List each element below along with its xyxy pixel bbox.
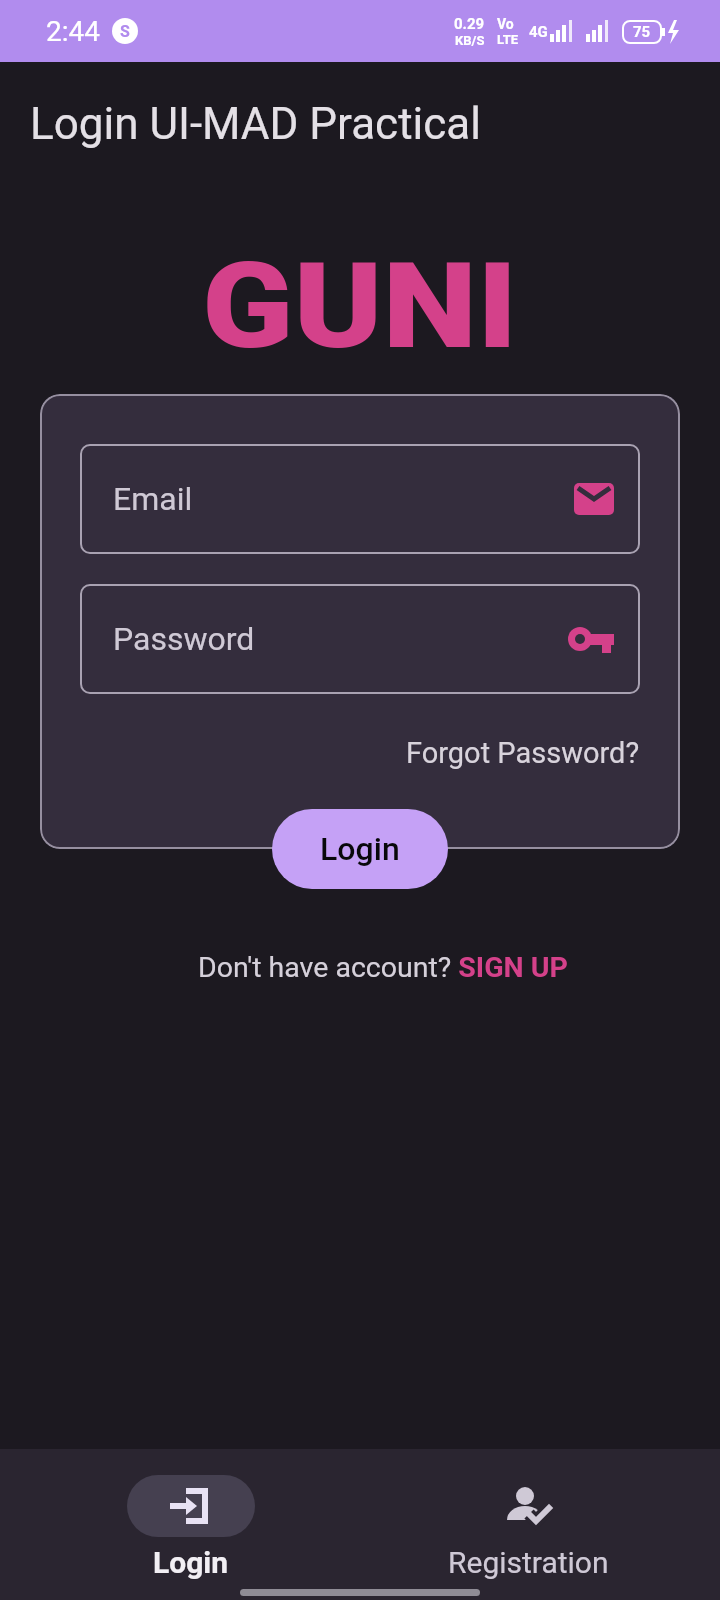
staticText: Email [113, 480, 193, 518]
staticText: LTE [497, 32, 519, 47]
staticText: 75 [633, 23, 651, 41]
staticText: Login UI-MAD Practical [30, 98, 481, 150]
staticText: 4G [529, 23, 548, 41]
staticText: 2:44 [46, 15, 100, 48]
button[interactable]: Registration [378, 1449, 678, 1600]
button[interactable]: Forgot Password? [406, 736, 640, 770]
button[interactable]: Password [80, 584, 640, 694]
button[interactable]: Login [272, 809, 448, 889]
staticText: 0.29 [454, 15, 485, 33]
staticText: S [120, 22, 130, 41]
staticText: GUNI [202, 237, 518, 376]
staticText: Don't have account? SIGN UP [198, 951, 568, 984]
staticText: KB/S [455, 33, 485, 48]
button[interactable]: Email [80, 444, 640, 554]
staticText: Vo [497, 16, 514, 32]
staticText: Login [153, 1545, 229, 1580]
button[interactable]: Don't have account? SIGN UP [0, 951, 720, 984]
staticText: Login [320, 830, 400, 868]
button[interactable]: Login [41, 1449, 341, 1600]
staticText: Password [113, 620, 255, 658]
staticText: Registration [448, 1545, 609, 1580]
